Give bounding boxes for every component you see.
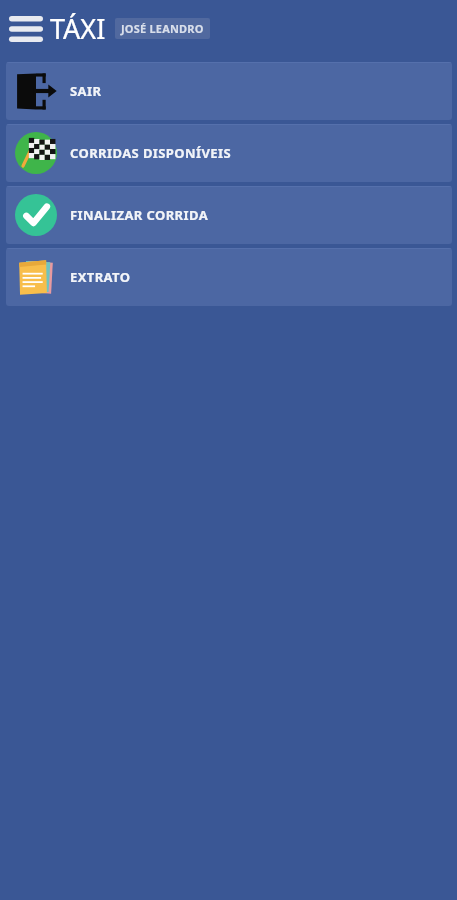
button[interactable]: SAIR (6, 62, 452, 120)
button[interactable]: CORRIDAS DISPONÍVEIS (6, 124, 452, 182)
staticText: SAIR (70, 82, 102, 100)
staticText: EXTRATO (70, 268, 131, 286)
button[interactable]: Open navigation menu (7, 9, 45, 49)
button[interactable]: EXTRATO (6, 248, 452, 306)
staticText: CORRIDAS DISPONÍVEIS (70, 144, 231, 162)
staticText: FINALIZAR CORRIDA (70, 206, 209, 224)
staticText: JOSÉ LEANDRO (121, 21, 204, 36)
button[interactable]: FINALIZAR CORRIDA (6, 186, 452, 244)
staticText: TÁXI (50, 10, 106, 47)
